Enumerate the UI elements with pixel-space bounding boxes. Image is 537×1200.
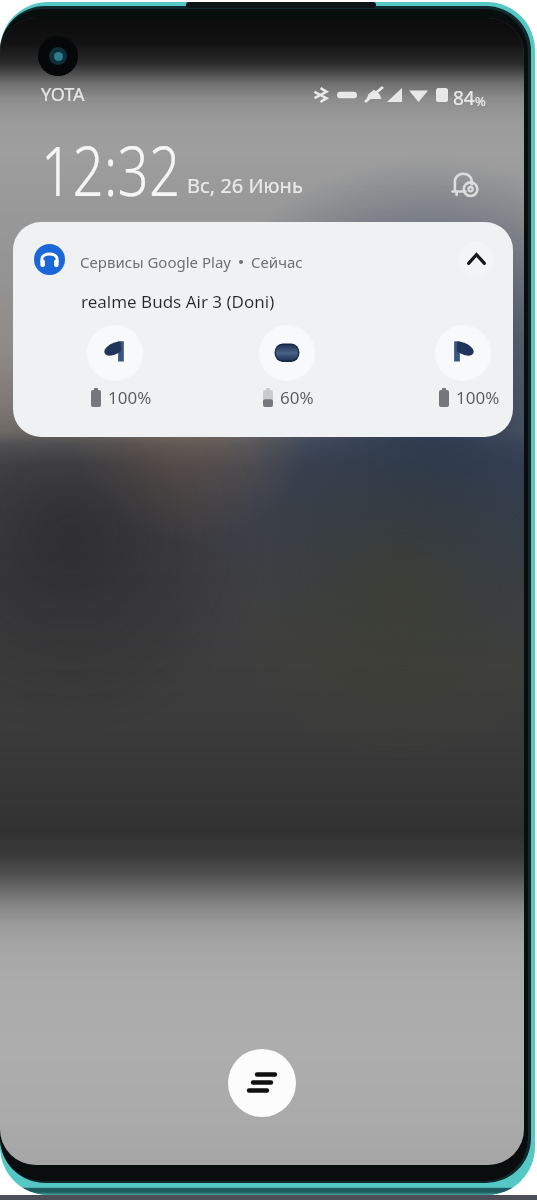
staticText: Сейчас	[251, 252, 303, 272]
button[interactable]: Alarm settings	[447, 165, 485, 203]
staticText: Сервисы Google Play	[80, 252, 231, 272]
staticText: realme Buds Air 3 (Doni)	[81, 290, 275, 313]
staticText: Вс, 26 Июнь	[187, 172, 303, 199]
button[interactable]: Unlock menu	[228, 1049, 296, 1117]
staticText: 60%	[280, 386, 314, 409]
staticText: 100%	[108, 386, 152, 409]
staticText: %	[475, 92, 486, 110]
staticText: 12:32	[41, 123, 180, 216]
button[interactable]: Collapse notification	[458, 241, 494, 277]
staticText: 84	[453, 85, 475, 111]
staticText: 100%	[456, 386, 500, 409]
staticText: YOTA	[41, 82, 85, 107]
button[interactable]: Сервисы Google Play	[13, 222, 513, 437]
